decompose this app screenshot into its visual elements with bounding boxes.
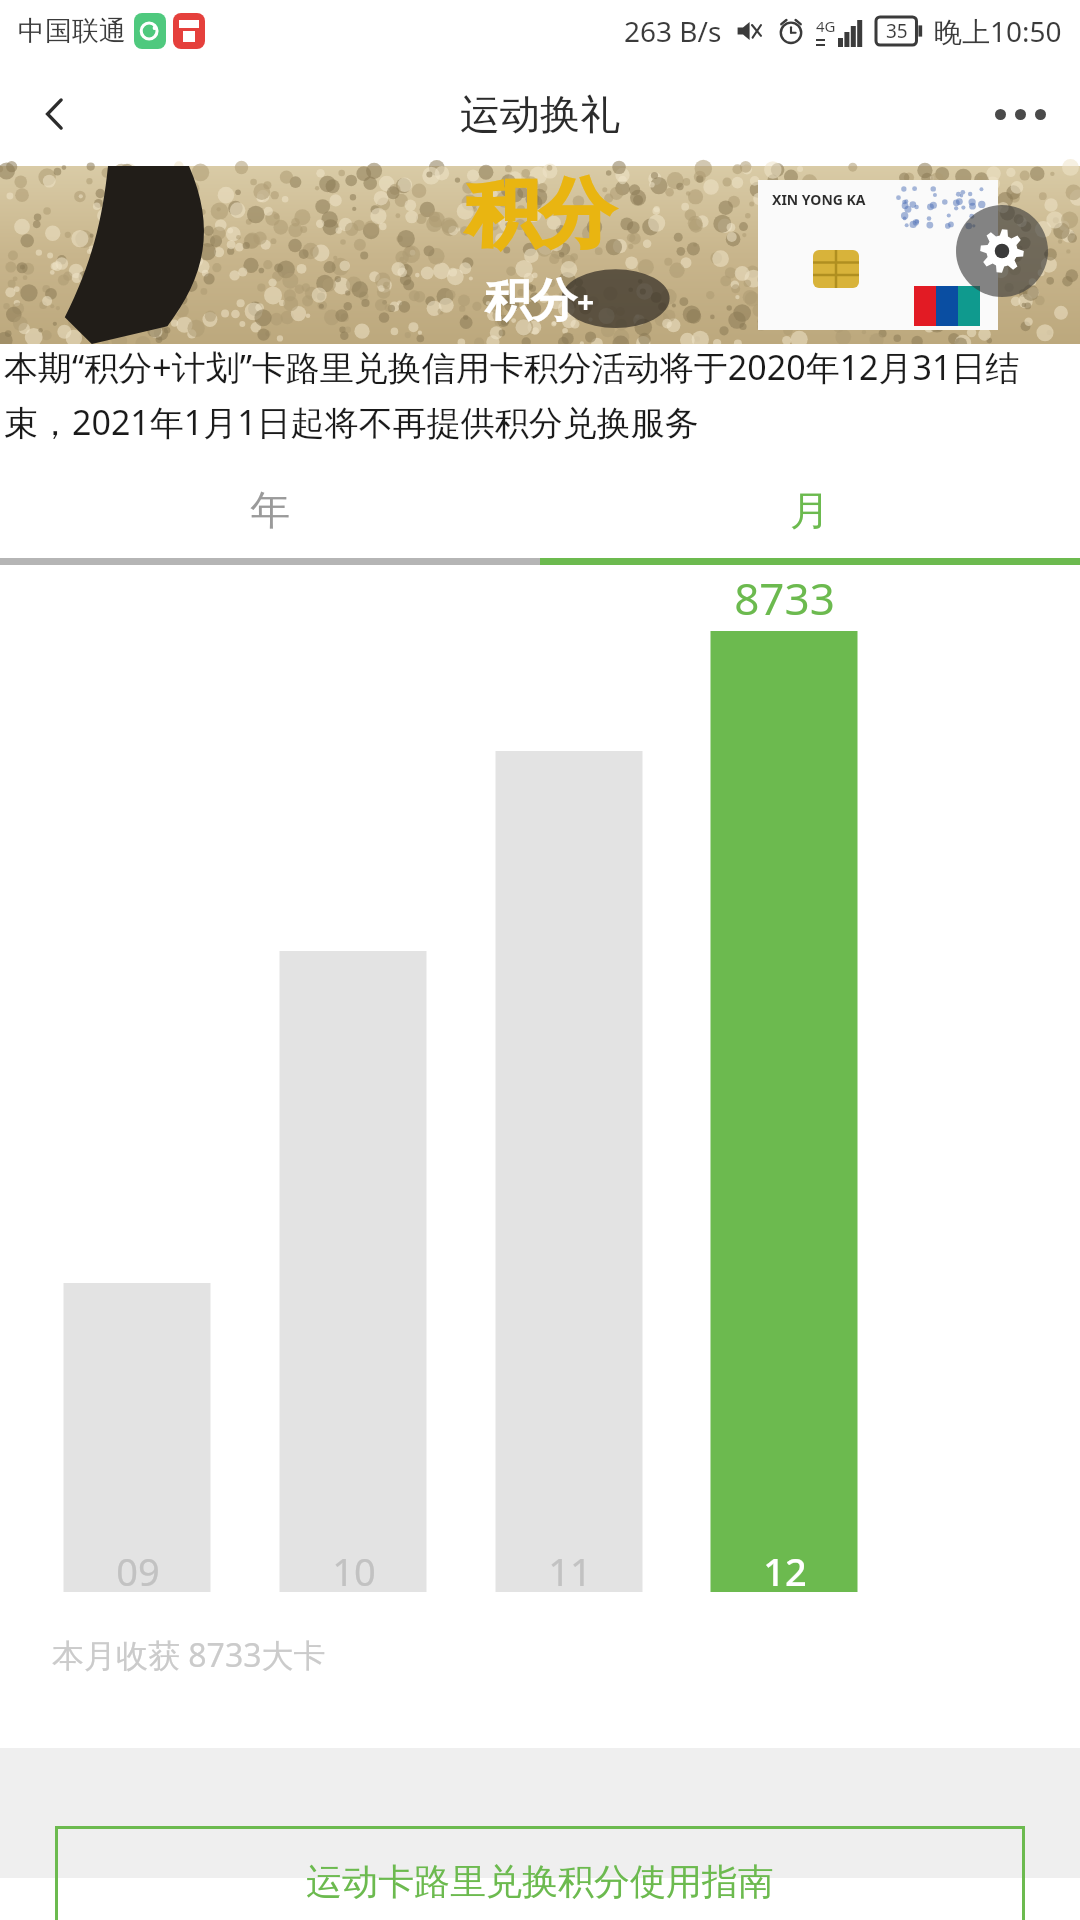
staticText: 35 (886, 18, 908, 44)
button[interactable]: 运动卡路里兑换积分使用指南 (55, 1826, 1025, 1920)
staticText: 263 B/s (624, 12, 722, 50)
button[interactable]: 积分 (0, 166, 1080, 344)
button[interactable]: 年 (0, 462, 540, 558)
staticText: 运动卡路里兑换积分使用指南 (306, 1859, 774, 1904)
staticText: 月 (790, 485, 830, 535)
staticText: 8733 (734, 568, 835, 628)
staticText: 晚上10:50 (934, 12, 1062, 50)
staticText: + (577, 281, 595, 322)
staticText: 4G (816, 16, 836, 36)
staticText: 本月收获 8733大卡 (52, 1633, 326, 1677)
staticText: XIN YONG KA (772, 190, 866, 209)
button[interactable]: Settings (956, 205, 1048, 297)
staticText: 积分 (466, 168, 614, 261)
button[interactable]: Back (0, 62, 110, 166)
staticText: 11 (548, 1545, 592, 1597)
staticText: 积分 (485, 272, 577, 330)
staticText: 本期“积分+计划”卡路里兑换信用卡积分活动将于2020年12月31日结束，202… (4, 344, 1076, 445)
staticText: 09 (116, 1545, 160, 1597)
staticText: 中国联通 (18, 14, 126, 48)
staticText: 10 (332, 1545, 376, 1597)
staticText: 年 (250, 485, 290, 535)
staticText: 运动换礼 (460, 89, 620, 139)
button[interactable]: More options (960, 62, 1080, 166)
button[interactable]: 月 (540, 462, 1080, 558)
staticText: 12 (763, 1545, 807, 1597)
